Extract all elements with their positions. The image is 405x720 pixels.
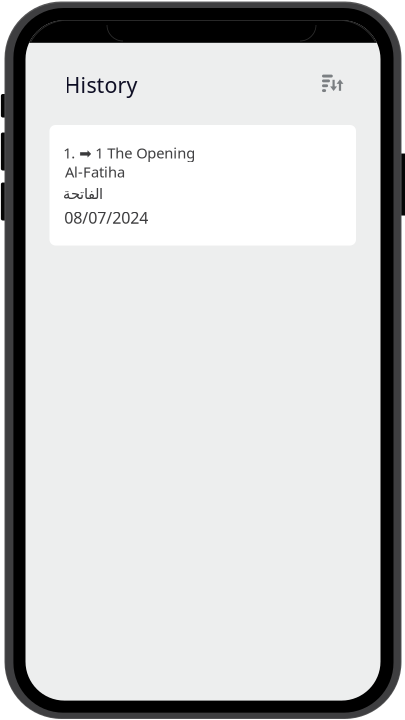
staticText: الفاتحة (62, 185, 102, 202)
staticText: 1. ➡ 1 The Opening (63, 143, 195, 162)
staticText: History (64, 70, 137, 99)
staticText: Al-Fatiha (65, 162, 125, 181)
button[interactable]: 1. ➡ 1 The Opening (49, 125, 356, 245)
button[interactable]: Sort order (316, 66, 350, 99)
button[interactable]: History (64, 69, 156, 101)
staticText: 08/07/2024 (64, 207, 148, 228)
